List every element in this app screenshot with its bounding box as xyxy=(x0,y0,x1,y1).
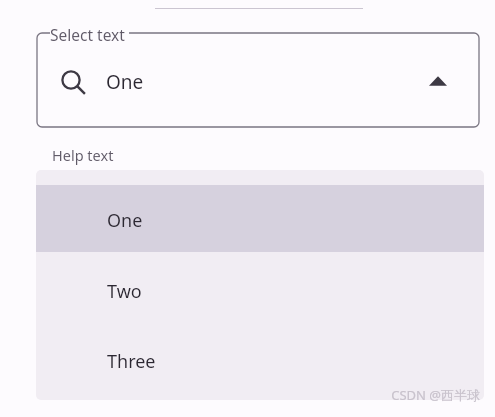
staticText: Two xyxy=(107,279,142,304)
staticText: Three xyxy=(107,349,156,374)
staticText: One xyxy=(106,69,144,95)
button[interactable]: Collapse dropdown xyxy=(425,72,451,90)
button[interactable]: Three xyxy=(36,326,484,393)
button[interactable]: Two xyxy=(36,256,484,323)
staticText: One xyxy=(107,208,143,233)
staticText: Select text xyxy=(50,24,125,45)
button[interactable]: Search xyxy=(36,32,480,128)
other: Search xyxy=(58,67,86,95)
staticText: Help text xyxy=(52,145,114,165)
button[interactable]: One xyxy=(36,185,484,252)
staticText: CSDN @西半球 xyxy=(368,386,480,406)
